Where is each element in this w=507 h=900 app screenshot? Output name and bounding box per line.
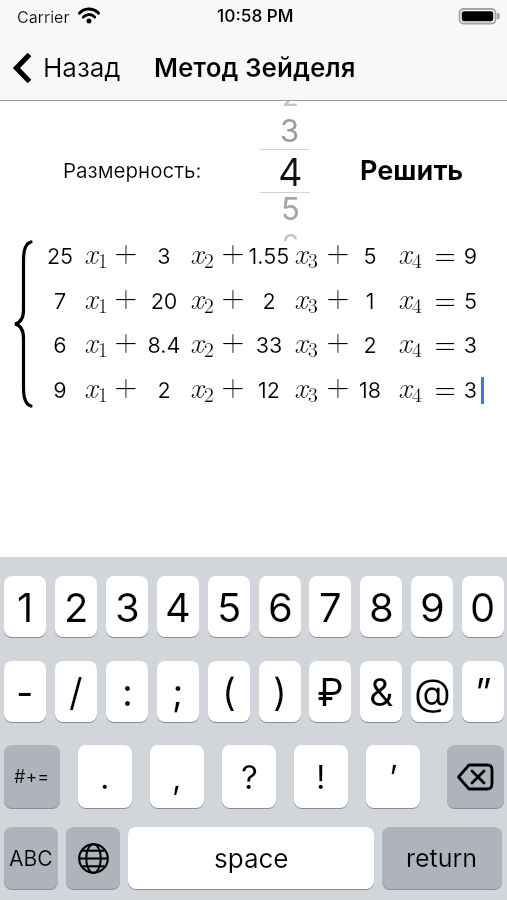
staticText: ,	[172, 757, 182, 797]
staticText: +	[218, 317, 248, 360]
staticText: 10:58 PM	[217, 6, 294, 27]
button[interactable]: (	[208, 661, 250, 724]
staticText: +	[322, 317, 354, 360]
staticText: ;	[172, 669, 184, 715]
button[interactable]	[447, 745, 504, 810]
staticText: 9	[38, 377, 82, 403]
button[interactable]: @	[411, 661, 453, 724]
button[interactable]: !	[294, 745, 348, 810]
staticText: 2	[64, 583, 89, 631]
button[interactable]: ,	[150, 745, 204, 810]
staticText: ’	[389, 757, 398, 797]
button[interactable]: ABC	[4, 827, 58, 891]
staticText: ?	[241, 757, 258, 797]
button[interactable]: ’	[366, 745, 420, 810]
staticText: !	[316, 757, 326, 797]
staticText: +	[110, 273, 142, 316]
staticText: )	[273, 669, 287, 715]
staticText: 6	[282, 228, 299, 241]
staticText: +	[218, 273, 248, 316]
staticText: :	[122, 669, 133, 715]
staticText: 5	[281, 190, 300, 228]
button[interactable]: /	[55, 661, 97, 724]
staticText: 25	[38, 243, 82, 269]
staticText: 2	[282, 101, 299, 113]
button[interactable]: .	[78, 745, 132, 810]
button[interactable]: 9	[411, 576, 453, 639]
staticText: 2	[248, 288, 290, 314]
staticText: 7	[319, 583, 342, 631]
staticText: =	[434, 365, 454, 408]
button[interactable]: 3	[106, 576, 148, 639]
button[interactable]: space	[128, 827, 374, 891]
staticText: ”	[475, 669, 492, 715]
staticText: 1	[354, 288, 386, 314]
staticText: x4	[386, 276, 434, 319]
staticText: x4	[386, 231, 434, 274]
staticText: -	[16, 669, 34, 715]
staticText: 5	[354, 243, 386, 269]
staticText: =	[434, 276, 454, 319]
staticText: 4	[165, 583, 191, 631]
staticText: 4	[278, 149, 303, 193]
button[interactable]: 2	[250, 101, 330, 241]
staticText: x2	[186, 276, 218, 319]
button[interactable]: return	[382, 827, 502, 891]
staticText: x1	[82, 320, 110, 363]
staticText: 3	[142, 243, 186, 269]
button[interactable]: 8	[360, 576, 402, 639]
staticText: 3	[280, 112, 300, 150]
staticText: Метод Зейделя	[154, 52, 356, 83]
button[interactable]: 5	[208, 576, 250, 639]
button[interactable]: 1	[4, 576, 46, 639]
staticText: 3	[454, 377, 487, 403]
staticText: x1	[82, 276, 110, 319]
button[interactable]: &	[360, 661, 402, 724]
button[interactable]: )	[259, 661, 301, 724]
button[interactable]: 2	[55, 576, 97, 639]
staticText: 6	[268, 583, 293, 631]
staticText: ₽	[317, 669, 344, 715]
staticText: 2	[142, 377, 186, 403]
button[interactable]: Решить	[352, 148, 472, 192]
button[interactable]: 0	[462, 576, 504, 639]
button[interactable]: -	[4, 661, 46, 724]
staticText: =	[434, 320, 454, 363]
staticText: 18	[354, 377, 386, 403]
staticText: 9	[420, 583, 445, 631]
button[interactable]: Назад	[8, 44, 128, 90]
button[interactable]: :	[106, 661, 148, 724]
staticText: x4	[386, 365, 434, 408]
staticText: Назад	[43, 52, 121, 83]
staticText: space	[214, 843, 289, 874]
button[interactable]: #+=	[4, 745, 60, 810]
button[interactable]: ;	[157, 661, 199, 724]
staticText: +	[322, 273, 354, 316]
staticText: +	[110, 317, 142, 360]
button[interactable]: ₽	[309, 661, 351, 724]
staticText: Carrier	[17, 7, 70, 26]
staticText: 3	[454, 332, 487, 358]
staticText: +	[322, 228, 354, 271]
staticText: ABC	[9, 846, 53, 871]
button[interactable]: ?	[222, 745, 276, 810]
staticText: x3	[290, 320, 322, 363]
button[interactable]: 6	[259, 576, 301, 639]
staticText: &	[369, 669, 394, 715]
staticText: +	[322, 362, 354, 405]
staticText: x2	[186, 320, 218, 363]
staticText: 3	[115, 583, 140, 631]
button[interactable]: ”	[462, 661, 504, 724]
staticText: x3	[290, 365, 322, 408]
button[interactable]: 4	[157, 576, 199, 639]
staticText: 1.55	[248, 243, 290, 269]
staticText: #+=	[14, 766, 50, 788]
button[interactable]	[66, 827, 120, 891]
staticText: 1	[17, 583, 34, 631]
staticText: 9	[454, 243, 487, 269]
staticText: +	[110, 228, 142, 271]
staticText: 0	[470, 583, 496, 631]
staticText: 5	[454, 288, 487, 314]
button[interactable]: 7	[309, 576, 351, 639]
staticText: x3	[290, 231, 322, 274]
